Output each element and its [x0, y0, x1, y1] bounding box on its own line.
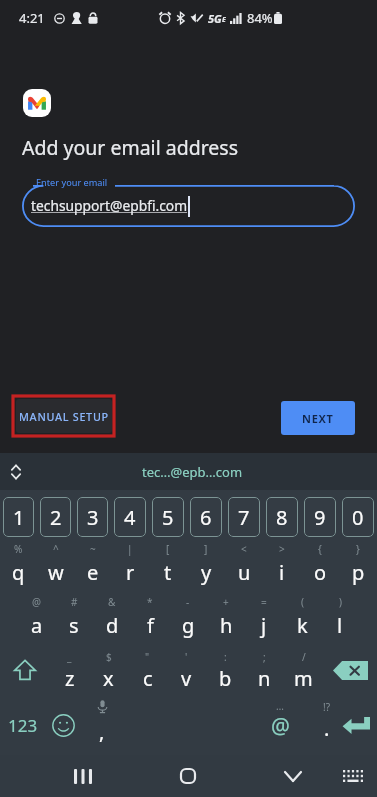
button[interactable]: 1 — [3, 497, 34, 537]
button[interactable]: / — [284, 646, 323, 692]
button[interactable]: : — [206, 646, 245, 692]
button[interactable]: = — [245, 593, 283, 639]
staticText: y — [201, 559, 212, 586]
button[interactable]: ] — [187, 540, 225, 586]
button[interactable]: Shift — [0, 646, 50, 692]
staticText: < — [241, 542, 247, 556]
button[interactable]: Hide keyboard — [273, 760, 313, 792]
staticText: = — [261, 595, 267, 609]
staticText: " — [145, 650, 150, 664]
button[interactable]: 9 — [304, 497, 336, 537]
staticText: b — [219, 665, 232, 692]
button[interactable]: % — [0, 540, 37, 586]
staticText: @ — [271, 712, 290, 741]
button[interactable]: MANUAL SETUP — [16, 399, 112, 433]
button[interactable]: # — [55, 593, 93, 639]
button[interactable]: > — [263, 540, 301, 586]
staticText: : — [224, 650, 227, 664]
staticText: / — [302, 650, 306, 664]
staticText: ( — [301, 595, 304, 609]
button[interactable]: Home — [168, 760, 208, 792]
button[interactable]: NEXT — [281, 401, 355, 435]
button[interactable]: ( — [283, 593, 321, 639]
staticText: [ — [166, 542, 170, 556]
staticText: Add your email address — [22, 134, 239, 161]
staticText: h — [220, 612, 233, 639]
staticText: } — [356, 542, 360, 556]
button[interactable]: 123 — [0, 699, 46, 751]
button[interactable]: 8 — [266, 497, 298, 537]
staticText: k — [297, 612, 308, 639]
staticText: techsupport@epbfi.com — [31, 196, 188, 215]
button[interactable]: ~ — [74, 540, 111, 586]
staticText: 9 — [314, 504, 326, 531]
button[interactable]: + — [207, 593, 245, 639]
button[interactable]: } — [339, 540, 377, 586]
staticText: 6 — [200, 504, 212, 531]
button[interactable]: Enter — [331, 699, 377, 751]
staticText: s — [69, 612, 79, 639]
button[interactable]: Emoji — [46, 699, 81, 751]
button[interactable]: ' — [167, 646, 206, 692]
button[interactable]: 5 — [152, 497, 184, 537]
button[interactable]: , — [81, 699, 123, 751]
staticText: x — [103, 665, 114, 692]
staticText: 3 — [87, 504, 99, 531]
button[interactable]: Expand suggestions — [4, 460, 28, 484]
staticText: i — [279, 559, 285, 586]
button[interactable]: * — [131, 593, 169, 639]
staticText: e — [87, 559, 99, 586]
button[interactable]: 0 — [342, 497, 374, 537]
staticText: ^ — [53, 542, 59, 556]
staticText: l — [337, 612, 343, 639]
staticText: 0 — [352, 504, 364, 531]
staticText: … — [276, 699, 284, 713]
staticText: m — [294, 665, 313, 692]
staticText: 84% — [247, 9, 273, 27]
staticText: p — [352, 559, 365, 586]
staticText: t — [164, 559, 172, 586]
staticText: ; — [263, 650, 266, 664]
button[interactable]: _ — [50, 646, 89, 692]
button[interactable]: Recents — [63, 760, 103, 792]
button[interactable]: tec…@epb…com — [142, 463, 243, 481]
staticText: > — [279, 542, 285, 556]
button[interactable]: Delete — [323, 646, 377, 692]
staticText: 123 — [8, 714, 38, 737]
button[interactable]: 7 — [228, 497, 260, 537]
button[interactable]: ) — [321, 593, 359, 639]
staticText: !? — [323, 700, 331, 714]
button[interactable]: [ — [149, 540, 187, 586]
button[interactable]: … — [259, 699, 301, 751]
staticText: 4 — [124, 504, 136, 531]
button[interactable]: 4 — [114, 497, 146, 537]
staticText: . — [324, 715, 330, 742]
button[interactable]: | — [111, 540, 149, 586]
button[interactable]: " — [128, 646, 167, 692]
staticText: 2 — [50, 504, 62, 531]
staticText: & — [108, 595, 116, 609]
button[interactable]: & — [93, 593, 131, 639]
button[interactable]: ^ — [37, 540, 74, 586]
staticText: | — [127, 542, 133, 556]
staticText: , — [99, 718, 105, 745]
button[interactable]: 3 — [77, 497, 108, 537]
button[interactable]: Change keyboard — [333, 760, 373, 792]
staticText: ] — [204, 542, 208, 556]
staticText: E — [222, 15, 226, 25]
button[interactable]: - — [169, 593, 207, 639]
button[interactable]: $ — [89, 646, 128, 692]
button[interactable]: 2 — [40, 497, 71, 537]
button[interactable]: ; — [245, 646, 284, 692]
button[interactable]: 6 — [190, 497, 222, 537]
button[interactable]: { — [301, 540, 339, 586]
button[interactable]: < — [225, 540, 263, 586]
staticText: Enter your email — [36, 176, 108, 189]
staticText: z — [65, 665, 75, 692]
staticText: n — [258, 665, 271, 692]
staticText: r — [126, 559, 135, 586]
button[interactable]: !? — [309, 699, 345, 751]
staticText: % — [14, 542, 23, 556]
button[interactable]: @ — [18, 593, 55, 639]
